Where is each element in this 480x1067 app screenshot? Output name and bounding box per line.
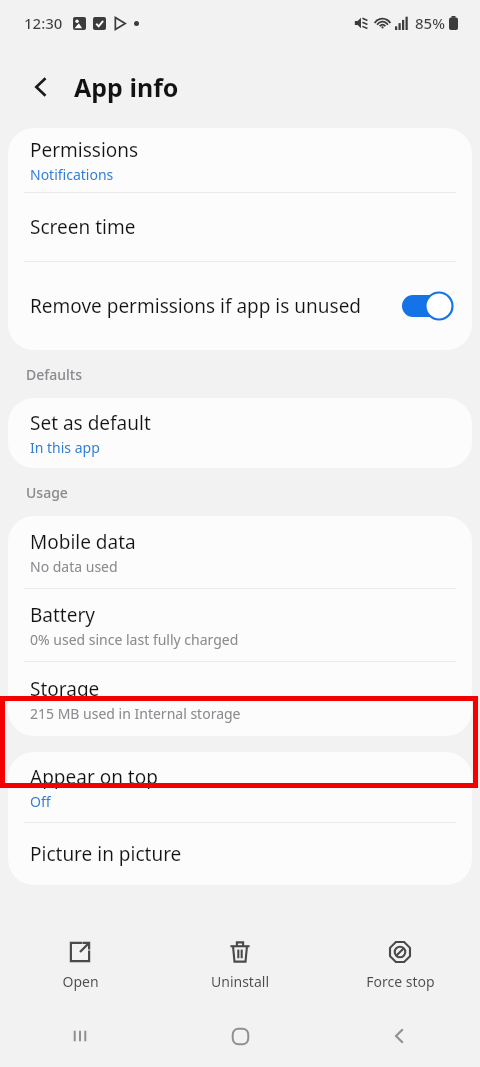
staticText: Permissions (30, 137, 139, 163)
staticText: 215 MB used in Internal storage (30, 704, 241, 723)
staticText: App info (74, 70, 179, 104)
button[interactable]: Force stop (320, 925, 480, 1005)
staticText: Remove permissions if app is unused (30, 293, 366, 319)
staticText: Mobile data (30, 529, 136, 555)
button[interactable]: Screen time (8, 193, 472, 261)
button[interactable]: Remove permissions if app is unused (8, 262, 472, 350)
staticText: Force stop (366, 972, 435, 991)
staticText: Set as default (30, 410, 151, 436)
staticText: Usage (26, 483, 68, 502)
staticText: Screen time (30, 214, 136, 240)
staticText: Notifications (30, 165, 114, 184)
staticText: In this app (30, 438, 100, 457)
button[interactable]: Storage (8, 662, 472, 736)
button[interactable]: Appear on top (8, 752, 472, 822)
button[interactable]: Open (0, 925, 160, 1005)
button[interactable]: Home (160, 1005, 320, 1067)
button[interactable]: Recent apps (0, 1005, 160, 1067)
staticText: Picture in picture (30, 841, 182, 867)
staticText: No data used (30, 557, 118, 576)
staticText: Appear on top (30, 764, 158, 790)
button[interactable]: Uninstall (160, 925, 320, 1005)
button[interactable]: Permissions (8, 128, 472, 192)
staticText: Open (62, 972, 99, 991)
staticText: Off (30, 792, 51, 811)
staticText: Storage (30, 676, 100, 702)
staticText: 85% (415, 13, 445, 33)
button[interactable]: Back (24, 69, 60, 105)
button[interactable]: Battery (8, 589, 472, 661)
button[interactable]: Mobile data (8, 516, 472, 588)
button[interactable]: Set as default (8, 398, 472, 468)
button[interactable]: Back (320, 1005, 480, 1067)
staticText: Battery (30, 602, 95, 628)
staticText: Uninstall (211, 972, 269, 991)
button[interactable]: Picture in picture (8, 823, 472, 885)
staticText: Defaults (26, 365, 82, 384)
staticText: 0% used since last fully charged (30, 630, 239, 649)
staticText: 12:30 (24, 13, 63, 33)
